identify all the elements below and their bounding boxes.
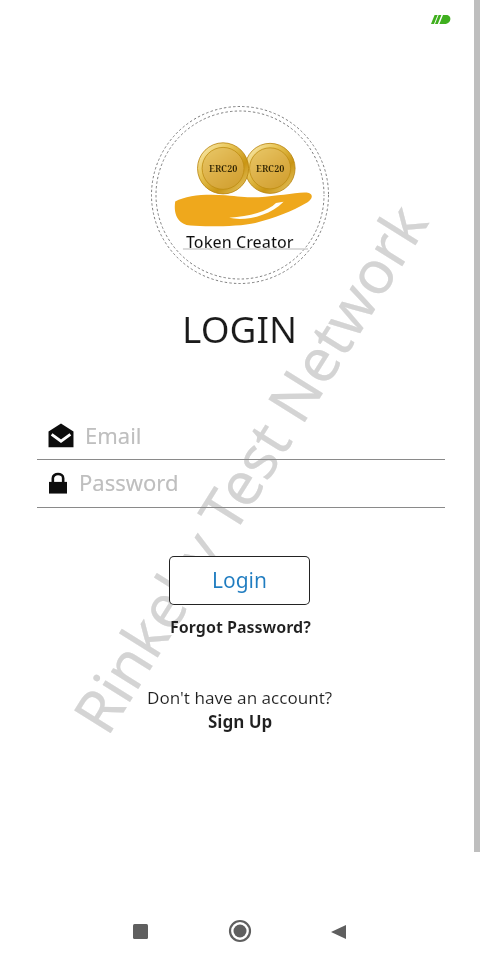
staticText: Don't have an account? [147,686,333,709]
button[interactable]: Sign Up [204,709,277,734]
staticText: ERC20 [209,162,238,174]
staticText: ERC20 [256,162,285,174]
staticText: Email [85,420,142,450]
button[interactable]: Home [222,913,258,949]
staticText: Rinkeby Test Network [53,188,445,747]
staticText: LOGIN [182,303,298,353]
staticText: Password [79,467,179,497]
button[interactable]: Back [320,914,356,950]
staticText: Sign Up [208,710,273,733]
button[interactable]: Recents [122,913,158,949]
button[interactable]: Forgot Password? [166,614,315,640]
staticText: Token Creator [186,231,294,253]
button[interactable]: Email [37,415,445,460]
staticText: Login [212,566,268,595]
button[interactable]: Login [169,556,310,605]
staticText: Forgot Password? [170,616,311,638]
button[interactable]: Password [37,463,445,508]
